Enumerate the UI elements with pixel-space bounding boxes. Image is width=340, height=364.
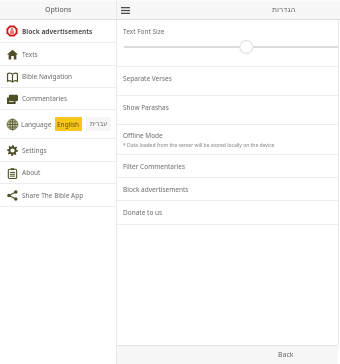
button[interactable]: Settings [0,139,116,161]
button[interactable]: Bible Navigation [0,66,116,87]
staticText: Block advertisements [22,27,93,36]
button[interactable]: Show Parashas [117,96,338,124]
staticText: Settings [22,146,47,155]
button[interactable]: Share The Bible App [0,184,116,206]
button[interactable]: Block advertisements [0,20,116,42]
staticText: Commentaries [22,94,68,103]
button[interactable]: Offline Mode [117,125,338,154]
staticText: Back [278,350,294,360]
button[interactable]: Donate to us [117,201,338,224]
staticText: הגדרות [272,5,296,14]
button[interactable]: Language [0,110,116,138]
staticText: Text Font Size [123,27,165,36]
staticText: Show Parashas [123,103,169,112]
staticText: Texts [22,50,38,59]
staticText: Bible Navigation [22,72,73,81]
staticText: Offline Mode [123,131,163,140]
staticText: Share The Bible App [22,191,84,200]
staticText: Filter Commentaries [123,162,186,171]
button[interactable]: Commentaries [0,88,116,109]
staticText: Language [21,120,52,129]
staticText: Separate Verses [123,74,172,83]
button[interactable]: Filter Commentaries [117,155,338,177]
staticText: עברית [90,120,108,128]
staticText: Block advertisements [123,185,189,194]
button[interactable]: Back [117,346,338,364]
staticText: English [57,120,80,129]
button[interactable]: English [55,117,82,131]
staticText: Options [45,5,72,15]
staticText: * Data loaded from the server will be st… [123,142,275,149]
button[interactable]: עברית [86,117,111,131]
staticText: Donate to us [123,208,163,217]
button[interactable]: Texts [0,43,116,65]
button[interactable]: Block advertisements [117,178,338,200]
button[interactable]: Open navigation menu [117,2,133,18]
staticText: About [22,168,41,177]
button[interactable]: Separate Verses [117,67,338,95]
button[interactable]: About [0,162,116,183]
